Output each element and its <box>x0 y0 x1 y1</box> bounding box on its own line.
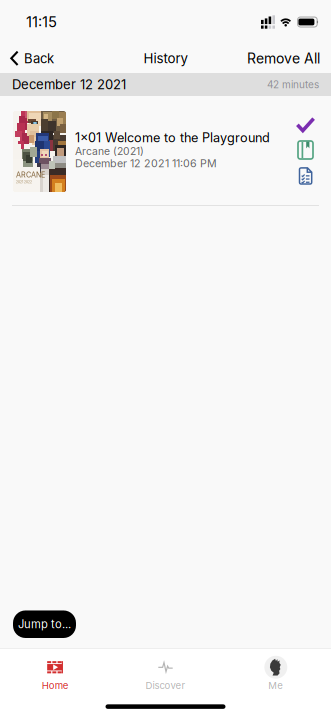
staticText: ARCANE <box>16 170 45 179</box>
staticText: 11:15 <box>26 13 57 31</box>
button[interactable]: Jump to... <box>13 610 76 638</box>
staticText: December 12 2021 <box>12 77 126 92</box>
staticText: Remove All <box>247 50 320 67</box>
button[interactable]: ARCANE <box>0 96 331 205</box>
staticText: Arcane (2021) <box>75 145 144 158</box>
staticText: Me <box>268 680 283 691</box>
staticText: Back <box>24 51 54 66</box>
button[interactable]: Discover <box>110 651 221 696</box>
staticText: 2021 2022 <box>16 180 32 184</box>
staticText: Jump to... <box>18 617 71 631</box>
staticText: Discover <box>145 680 185 691</box>
button[interactable]: Back <box>0 45 64 71</box>
staticText: Home <box>42 680 69 691</box>
button[interactable]: Remove All <box>236 45 331 72</box>
staticText: December 12 2021 11:06 PM <box>75 157 217 170</box>
staticText: 1x01 Welcome to the Playground <box>75 130 270 145</box>
button[interactable]: Me <box>221 651 331 696</box>
staticText: History <box>143 50 187 66</box>
staticText: 42 minutes <box>267 78 319 91</box>
button[interactable]: Home <box>0 651 110 696</box>
